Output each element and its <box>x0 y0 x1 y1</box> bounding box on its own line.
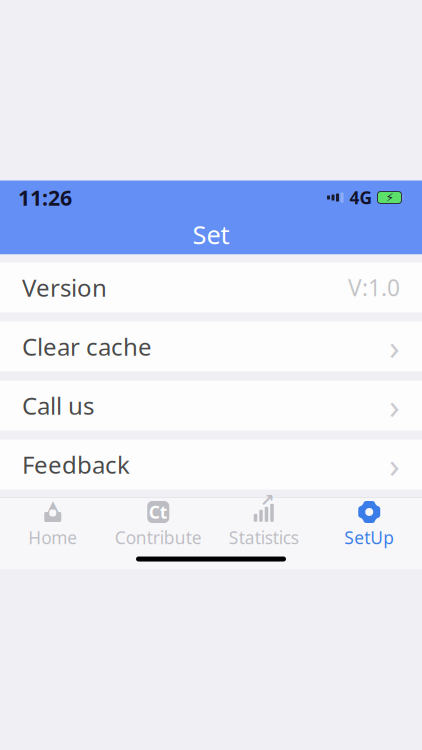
staticText: ⚡︎ <box>385 191 393 204</box>
staticText: › <box>389 441 400 487</box>
staticText: ▲ <box>45 496 60 518</box>
button[interactable]: Version <box>0 262 422 312</box>
staticText: Call us <box>22 390 94 421</box>
staticText: SetUp <box>344 526 394 549</box>
staticText: Version <box>22 272 107 303</box>
button[interactable]: Clear cache <box>0 321 422 371</box>
button[interactable]: ↗ <box>211 502 316 548</box>
button[interactable]: Feedback <box>0 439 422 489</box>
staticText: 11:26 <box>18 183 72 212</box>
staticText: Ct <box>149 500 168 523</box>
button[interactable]: Ct <box>105 502 211 548</box>
button[interactable]: ▲ <box>0 502 105 548</box>
staticText: 4G <box>349 186 372 209</box>
staticText: Set <box>192 218 229 251</box>
staticText: › <box>389 382 400 428</box>
staticText: Clear cache <box>22 331 152 362</box>
button[interactable]: Call us <box>0 380 422 430</box>
staticText: Statistics <box>229 526 299 549</box>
staticText: Home <box>28 526 77 549</box>
staticText: Feedback <box>22 449 130 480</box>
staticText: › <box>389 323 400 369</box>
staticText: Contribute <box>115 526 202 549</box>
staticText: V:1.0 <box>348 272 400 302</box>
button[interactable]: SetUp <box>316 502 422 548</box>
staticText: ↗ <box>260 490 275 510</box>
